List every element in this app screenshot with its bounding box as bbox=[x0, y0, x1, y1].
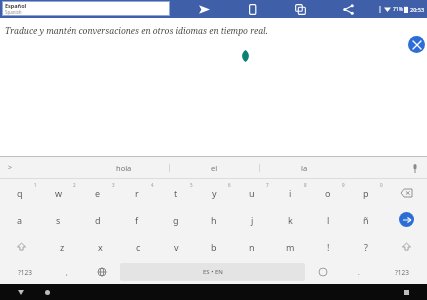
button[interactable]: Enter bbox=[385, 206, 427, 233]
button[interactable]: y bbox=[195, 179, 233, 206]
button[interactable]: d bbox=[78, 206, 117, 233]
button[interactable]: b bbox=[195, 233, 233, 260]
staticText: 2 bbox=[73, 182, 76, 188]
button[interactable]: ñ bbox=[347, 206, 385, 233]
button[interactable]: s bbox=[39, 206, 78, 233]
staticText: g bbox=[173, 214, 179, 226]
staticText: 71% bbox=[393, 6, 403, 13]
staticText: j bbox=[251, 214, 254, 226]
button[interactable]: ?123 bbox=[0, 260, 49, 284]
staticText: ES • EN bbox=[203, 268, 223, 276]
staticText: y bbox=[212, 187, 217, 199]
staticText: 1 bbox=[34, 182, 37, 188]
staticText: 4 bbox=[151, 182, 154, 188]
button[interactable]: m bbox=[271, 233, 309, 260]
staticText: a bbox=[17, 214, 23, 226]
staticText: u bbox=[249, 187, 255, 199]
staticText: ?123 bbox=[18, 268, 32, 277]
staticText: > bbox=[8, 163, 13, 173]
button[interactable]: ?123 bbox=[377, 260, 427, 284]
button[interactable]: x bbox=[81, 233, 119, 260]
button[interactable]: Send bbox=[180, 0, 228, 18]
button[interactable]: h bbox=[195, 206, 233, 233]
button[interactable]: r bbox=[117, 179, 156, 206]
button[interactable]: Shift bbox=[0, 233, 43, 260]
staticText: 7 bbox=[266, 182, 269, 188]
button[interactable]: Share bbox=[324, 0, 372, 18]
button[interactable]: f bbox=[117, 206, 156, 233]
staticText: x bbox=[98, 241, 103, 253]
staticText: el bbox=[211, 163, 218, 173]
button[interactable]: w bbox=[39, 179, 78, 206]
staticText: w bbox=[55, 187, 63, 199]
staticText: e bbox=[95, 187, 101, 199]
button[interactable]: v bbox=[157, 233, 195, 260]
button[interactable]: n bbox=[233, 233, 271, 260]
button[interactable]: e bbox=[78, 179, 117, 206]
button[interactable]: t bbox=[156, 179, 195, 206]
staticText: l bbox=[327, 214, 330, 226]
staticText: 9 bbox=[342, 182, 345, 188]
staticText: i bbox=[289, 187, 292, 199]
staticText: h bbox=[211, 214, 217, 226]
button[interactable]: z bbox=[43, 233, 81, 260]
staticText: c bbox=[136, 241, 141, 253]
staticText: 0 bbox=[380, 182, 383, 188]
button[interactable]: el bbox=[170, 157, 259, 179]
button[interactable]: hola bbox=[79, 157, 169, 179]
button[interactable]: g bbox=[156, 206, 195, 233]
button[interactable]: j bbox=[233, 206, 271, 233]
staticText: 20:53 bbox=[410, 6, 425, 13]
button[interactable]: Home bbox=[40, 285, 54, 299]
button[interactable]: la bbox=[260, 157, 349, 179]
staticText: v bbox=[174, 241, 179, 253]
button[interactable]: p bbox=[347, 179, 385, 206]
button[interactable]: q bbox=[0, 179, 39, 206]
button[interactable]: k bbox=[271, 206, 309, 233]
staticText: . bbox=[358, 268, 360, 277]
staticText: q bbox=[17, 187, 23, 199]
staticText: s bbox=[56, 214, 61, 226]
staticText: r bbox=[135, 187, 139, 199]
button[interactable]: Clear text bbox=[408, 36, 425, 53]
staticText: ?123 bbox=[395, 268, 409, 277]
button[interactable]: ! bbox=[309, 233, 347, 260]
button[interactable]: Recent apps bbox=[399, 285, 413, 299]
button[interactable]: Change language bbox=[84, 260, 120, 284]
button[interactable]: Emoji bbox=[305, 260, 341, 284]
button[interactable]: i bbox=[271, 179, 309, 206]
staticText: p bbox=[363, 187, 369, 199]
button[interactable]: Copy bbox=[228, 0, 276, 18]
staticText: ! bbox=[327, 241, 330, 253]
staticText: n bbox=[249, 241, 255, 253]
button[interactable]: Español bbox=[2, 1, 170, 16]
staticText: , bbox=[66, 268, 68, 277]
button[interactable]: u bbox=[233, 179, 271, 206]
staticText: 5 bbox=[190, 182, 193, 188]
button[interactable]: Backspace bbox=[385, 179, 427, 206]
staticText: ñ bbox=[363, 214, 369, 226]
button[interactable]: o bbox=[309, 179, 347, 206]
button[interactable]: Shift bbox=[385, 233, 427, 260]
staticText: k bbox=[288, 214, 293, 226]
button[interactable]: ES • EN bbox=[120, 263, 305, 281]
staticText: f bbox=[135, 214, 139, 226]
staticText: Español bbox=[5, 2, 27, 9]
staticText: hola bbox=[116, 163, 132, 173]
button[interactable]: Copy all bbox=[276, 0, 324, 18]
staticText: 8 bbox=[304, 182, 307, 188]
button[interactable]: ? bbox=[347, 233, 385, 260]
button[interactable]: l bbox=[309, 206, 347, 233]
staticText: o bbox=[325, 187, 331, 199]
staticText: la bbox=[301, 163, 308, 173]
button[interactable]: c bbox=[119, 233, 157, 260]
button[interactable]: a bbox=[0, 206, 39, 233]
staticText: t bbox=[174, 187, 178, 199]
button[interactable]: Back bbox=[14, 285, 28, 299]
staticText: z bbox=[60, 241, 65, 253]
button[interactable]: Voice input bbox=[403, 157, 427, 179]
staticText: m bbox=[286, 241, 295, 253]
button[interactable]: Expand suggestions bbox=[0, 157, 20, 179]
